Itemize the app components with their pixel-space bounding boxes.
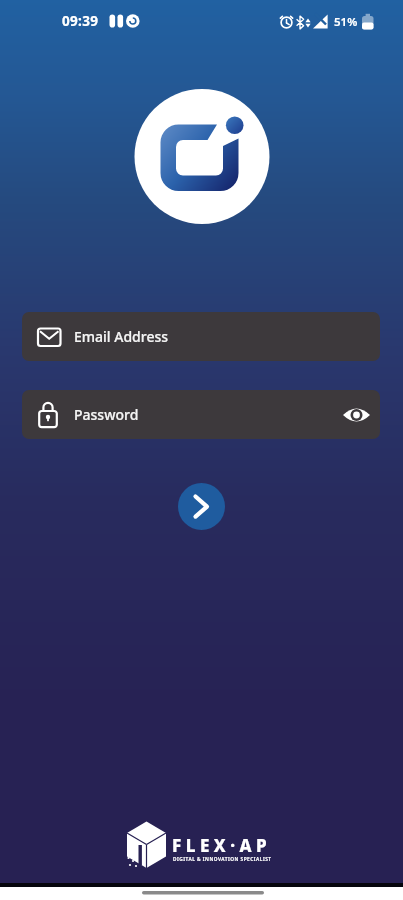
staticText: Password [74,405,139,424]
button[interactable]: Password [22,390,380,439]
button[interactable]: Email Address [22,312,380,361]
staticText: Email Address [74,327,169,346]
staticText: FLEX·AP [172,834,272,857]
button[interactable] [178,483,225,530]
staticText: 51% [334,14,358,30]
staticText: 09:39 [62,12,99,30]
staticText: DIGITAL & INNOVATION SPECIALIST [173,856,272,863]
